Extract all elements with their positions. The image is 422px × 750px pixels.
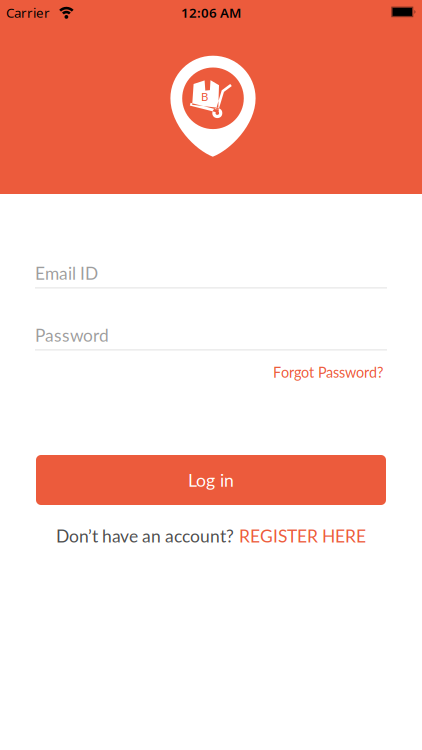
staticText: Log in [188, 469, 234, 490]
staticText: Carrier [6, 4, 50, 21]
staticText: 12:06 AM [181, 4, 241, 21]
button[interactable]: REGISTER HERE [239, 525, 366, 546]
button[interactable]: Forgot Password? [273, 364, 383, 381]
staticText: Forgot Password? [273, 364, 383, 381]
staticText: Don’t have an account? [56, 525, 234, 546]
button[interactable]: Password [35, 325, 387, 350]
staticText: Password [35, 325, 109, 345]
staticText: Email ID [35, 263, 98, 283]
staticText: REGISTER HERE [239, 525, 366, 546]
button[interactable]: Log in [36, 455, 386, 505]
button[interactable]: Email ID [35, 263, 387, 288]
staticText: B [201, 90, 208, 103]
